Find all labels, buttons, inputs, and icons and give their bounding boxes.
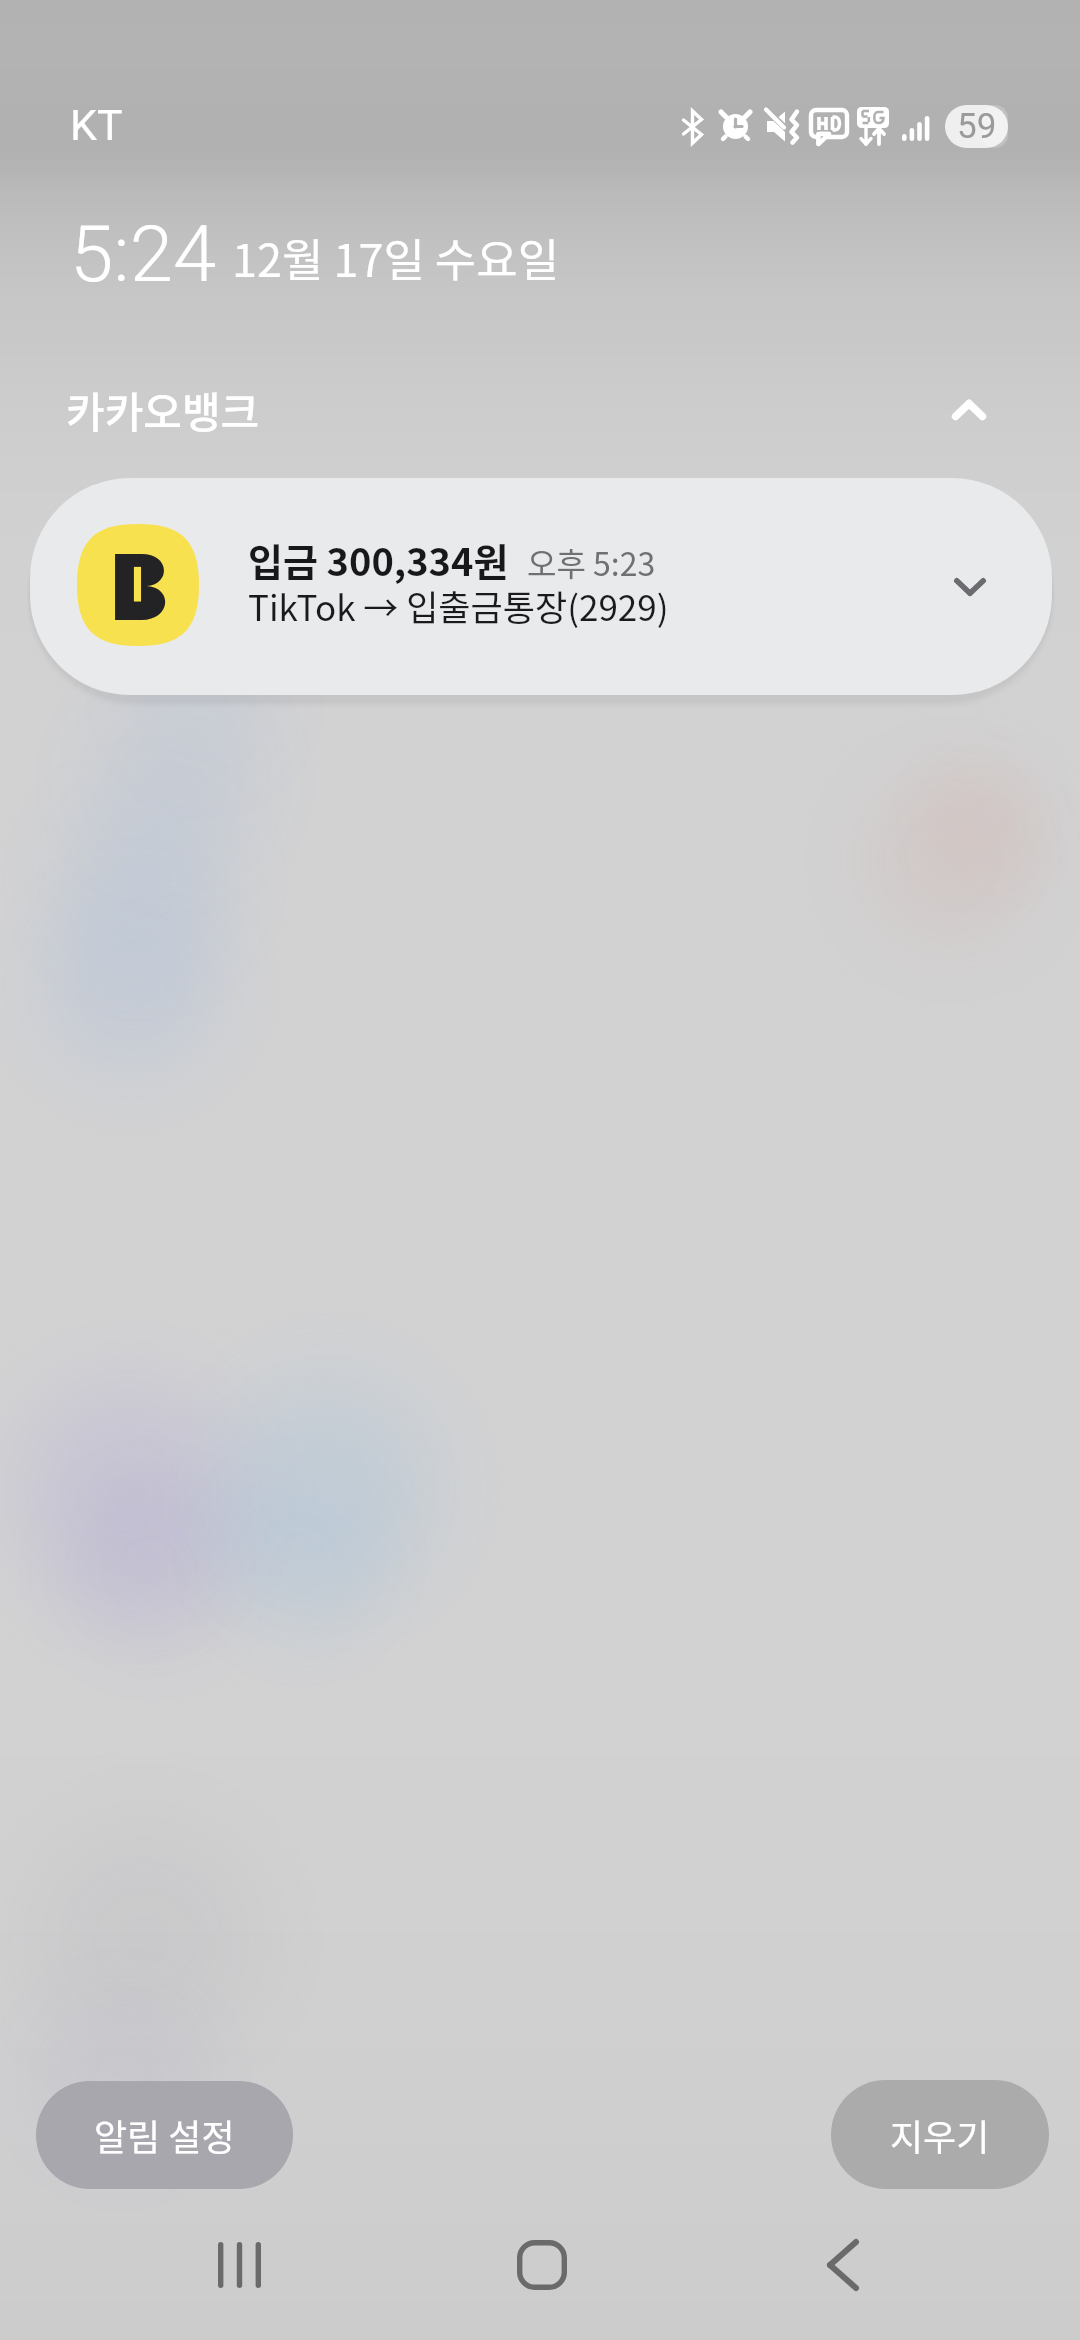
staticText: TikTok → 입출금통장(2929) <box>248 580 669 631</box>
button[interactable]: 카카오뱅크 <box>30 368 910 452</box>
button[interactable]: Back <box>773 2218 913 2312</box>
staticText: KT <box>70 100 123 150</box>
staticText: 알림 설정 <box>94 2109 235 2161</box>
staticText: 12월 17일 수요일 <box>232 225 560 290</box>
staticText: 오후 5:23 <box>527 539 656 585</box>
button[interactable]: 알림 설정 <box>36 2081 293 2189</box>
button[interactable]: Expand notification <box>921 542 1018 632</box>
button[interactable]: Recent apps <box>169 2218 309 2312</box>
staticText: 5:24 <box>70 209 217 300</box>
button[interactable]: 지우기 <box>831 2080 1049 2189</box>
button[interactable]: Collapse group <box>925 368 1013 452</box>
staticText: 입금 300,334원 <box>248 532 509 587</box>
button[interactable]: 입금 300,334원 <box>30 478 1052 695</box>
staticText: 지우기 <box>890 2109 990 2161</box>
staticText: 카카오뱅크 <box>66 379 260 440</box>
button[interactable]: Home <box>472 2218 612 2312</box>
staticText: 59 <box>957 106 997 147</box>
